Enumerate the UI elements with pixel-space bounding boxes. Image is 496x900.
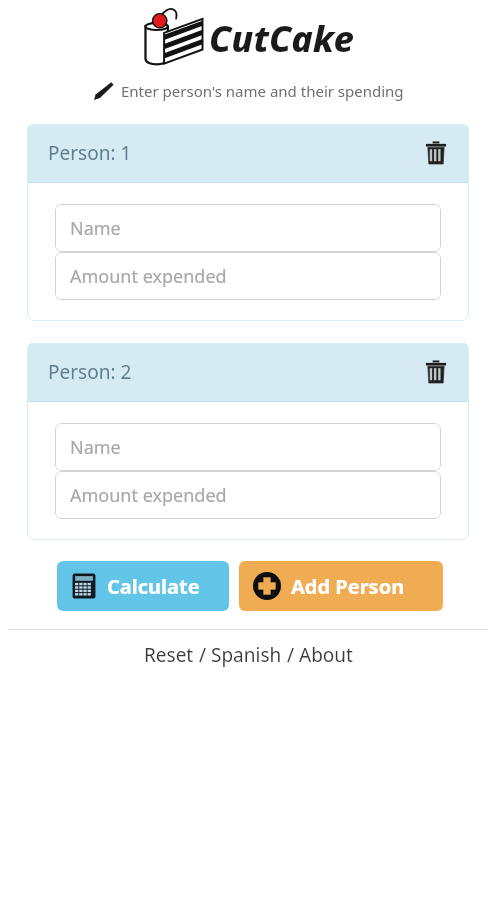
staticText: / bbox=[194, 642, 211, 668]
staticText: About bbox=[299, 642, 353, 668]
button[interactable]: Name bbox=[55, 423, 441, 471]
button[interactable]: Amount expended bbox=[55, 252, 441, 300]
staticText: Person: 2 bbox=[48, 359, 132, 385]
staticText: / bbox=[282, 642, 299, 668]
staticText: Reset bbox=[144, 642, 194, 668]
staticText: Amount expended bbox=[70, 483, 227, 508]
button[interactable]: Person: 1 bbox=[27, 124, 469, 182]
staticText: Name bbox=[70, 435, 121, 460]
staticText: Calculate bbox=[107, 573, 200, 600]
button[interactable]: About bbox=[299, 642, 353, 668]
staticText: Person: 1 bbox=[48, 140, 132, 166]
button[interactable]: Spanish bbox=[211, 642, 282, 668]
button[interactable]: Delete person bbox=[421, 357, 451, 387]
button[interactable]: Person: 2 bbox=[27, 343, 469, 401]
button[interactable]: Amount expended bbox=[55, 471, 441, 519]
button[interactable]: Add Person bbox=[239, 561, 443, 611]
staticText: Name bbox=[70, 216, 121, 241]
staticText: Enter person's name and their spending bbox=[121, 81, 404, 101]
button[interactable]: Name bbox=[55, 204, 441, 252]
staticText: Spanish bbox=[211, 642, 282, 668]
button[interactable]: Delete person bbox=[421, 138, 451, 168]
button[interactable]: Reset bbox=[144, 642, 194, 668]
staticText: CutCake bbox=[209, 14, 354, 63]
staticText: Amount expended bbox=[70, 264, 227, 289]
staticText: Add Person bbox=[291, 573, 405, 600]
button[interactable]: Calculate bbox=[57, 561, 229, 611]
